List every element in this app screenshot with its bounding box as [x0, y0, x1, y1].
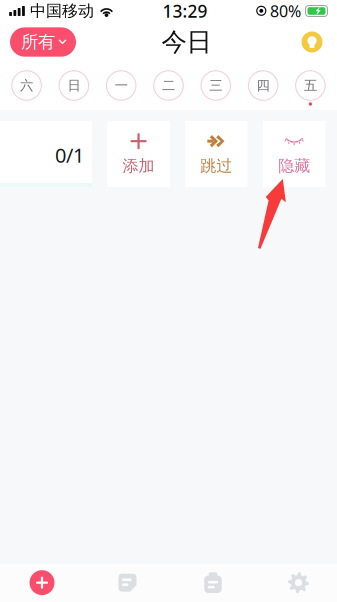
button[interactable]: 三 — [194, 64, 238, 108]
button[interactable]: 记录 — [85, 563, 170, 602]
staticText: 三 — [209, 77, 222, 94]
button[interactable]: 添加习惯 — [0, 563, 85, 602]
button[interactable]: 一 — [99, 64, 143, 108]
button[interactable]: 五 — [288, 64, 332, 108]
button[interactable]: 六 — [5, 64, 49, 108]
button[interactable]: 跳过 — [185, 121, 248, 187]
button[interactable]: 0/1 — [0, 121, 92, 187]
button[interactable]: 隐藏 — [263, 121, 325, 187]
staticText: 0/1 — [55, 142, 84, 168]
button[interactable]: 所有 — [10, 27, 76, 57]
staticText: 中国移动 — [30, 1, 94, 21]
staticText: 添加 — [122, 156, 154, 176]
staticText: 日 — [67, 77, 80, 94]
staticText: 四 — [257, 77, 270, 94]
staticText: 跳过 — [200, 156, 232, 176]
staticText: 隐藏 — [278, 156, 310, 176]
button[interactable]: 提示 — [297, 27, 327, 57]
button[interactable]: 设置 — [256, 563, 337, 602]
staticText: 六 — [20, 77, 33, 94]
staticText: 13:29 — [162, 0, 207, 22]
staticText: 80% — [270, 0, 301, 22]
staticText: 所有 — [21, 31, 55, 53]
button[interactable]: 二 — [146, 64, 190, 108]
staticText: 今日 — [161, 26, 211, 57]
staticText: 二 — [162, 77, 175, 94]
button[interactable]: 四 — [241, 64, 285, 108]
staticText: 一 — [115, 77, 128, 94]
button[interactable]: 日 — [52, 64, 96, 108]
staticText: 五 — [304, 77, 317, 94]
button[interactable]: 添加 — [107, 121, 170, 187]
button[interactable]: 统计 — [170, 563, 256, 602]
